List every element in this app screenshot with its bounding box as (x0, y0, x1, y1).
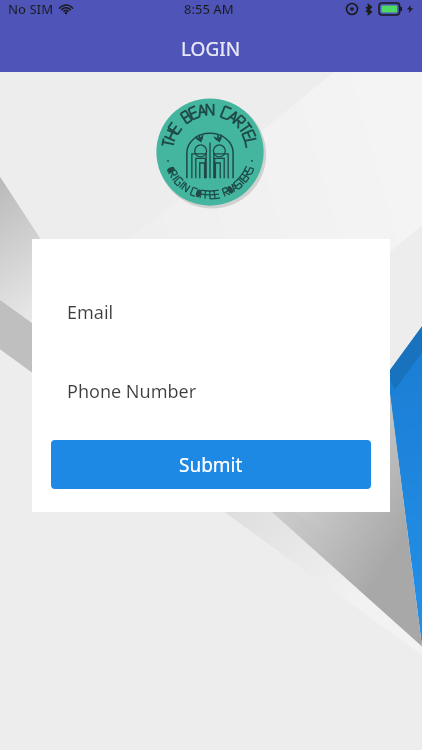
button[interactable]: Email (32, 291, 390, 333)
staticText: Submit (179, 452, 243, 478)
staticText: Email (67, 300, 114, 325)
button[interactable]: Submit (51, 440, 371, 489)
staticText: LOGIN (181, 36, 241, 62)
staticText: No SIM (8, 0, 54, 18)
staticText: 8:55 AM (184, 0, 234, 18)
staticText: Phone Number (67, 379, 197, 404)
button[interactable]: Phone Number (32, 370, 390, 412)
